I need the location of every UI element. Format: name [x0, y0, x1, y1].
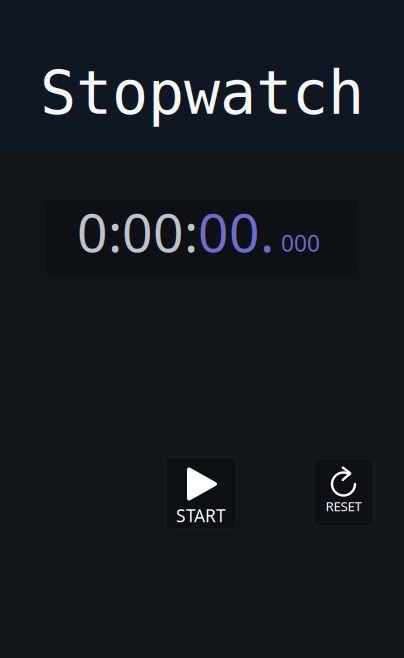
button[interactable]: START	[165, 457, 237, 529]
staticText: 0:00:	[77, 196, 198, 267]
staticText: RESET	[325, 497, 361, 515]
button[interactable]: RESET	[313, 459, 374, 526]
staticText: 000	[281, 228, 320, 258]
staticText: 00.	[198, 196, 274, 267]
staticText: START	[176, 504, 226, 527]
staticText: Stopwatch	[40, 59, 364, 127]
